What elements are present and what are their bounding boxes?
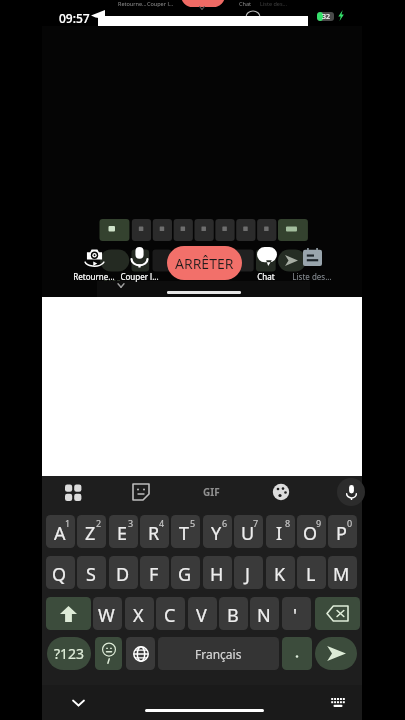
staticText: GIF [203, 485, 220, 499]
staticText: Liste des... [292, 271, 332, 282]
button[interactable]: Envoyer [315, 637, 357, 670]
button[interactable]: H [203, 556, 232, 589]
staticText: N [257, 603, 271, 628]
button[interactable]: Point [282, 637, 312, 670]
staticText: 3 [128, 517, 134, 529]
button[interactable]: Z [77, 515, 106, 548]
button[interactable]: Q [46, 556, 75, 589]
staticText: 2 [96, 517, 102, 529]
button[interactable]: O [297, 515, 326, 548]
button[interactable]: X [125, 597, 154, 630]
staticText: ' [293, 603, 298, 628]
button[interactable]: D [109, 556, 138, 589]
staticText: K [274, 562, 286, 587]
button[interactable]: Autocollants [131, 482, 151, 502]
staticText: Couper l... [120, 271, 159, 282]
button[interactable]: Changer de langue [126, 637, 155, 670]
staticText: 5 [190, 517, 196, 529]
button[interactable]: Saisie vocale [337, 478, 365, 506]
staticText: O [303, 521, 318, 546]
staticText: E [117, 521, 128, 546]
button[interactable]: Chat [243, 245, 289, 282]
staticText: Chat [257, 271, 275, 282]
staticText: ?123 [104, 278, 122, 289]
button[interactable]: Themes [271, 482, 291, 502]
staticText: Retourne... [73, 271, 115, 282]
staticText: X [133, 603, 144, 628]
button[interactable]: W [93, 597, 122, 630]
staticText: F [149, 562, 159, 587]
button[interactable]: GIF [201, 482, 221, 502]
staticText: U [241, 521, 255, 546]
button[interactable]: V [188, 597, 217, 630]
button[interactable]: Couper le micro [116, 245, 162, 282]
button[interactable]: F [140, 556, 169, 589]
button[interactable]: ' [282, 597, 311, 630]
staticText: Retourne... [118, 0, 147, 7]
staticText: Y [211, 521, 222, 546]
button[interactable]: Emoji [95, 637, 122, 670]
staticText: J [245, 562, 250, 587]
staticText: D [116, 562, 130, 587]
button[interactable]: J [234, 556, 263, 589]
staticText: 09:57 [59, 10, 90, 26]
staticText: Q [52, 562, 67, 587]
button[interactable]: Fermer le clavier [64, 689, 92, 717]
button[interactable]: U [234, 515, 263, 548]
button[interactable]: G [171, 556, 200, 589]
staticText: Z [85, 521, 96, 546]
staticText: G [178, 562, 192, 587]
staticText: T [179, 521, 190, 546]
staticText: 9 [316, 517, 322, 529]
button[interactable]: C [156, 597, 185, 630]
staticText: Français [195, 646, 242, 662]
staticText: 8 [285, 517, 291, 529]
staticText: ARRÊTER [175, 254, 234, 273]
button[interactable]: K [266, 556, 295, 589]
button[interactable]: S [77, 556, 106, 589]
staticText: V [196, 603, 207, 628]
staticText: A [54, 521, 66, 546]
button[interactable]: M [328, 556, 357, 589]
staticText: R [148, 521, 160, 546]
button[interactable]: Liste des participants [289, 245, 335, 282]
button[interactable]: A [46, 515, 75, 548]
staticText: W [98, 603, 115, 628]
staticText: M [333, 562, 350, 587]
staticText: 4 [159, 517, 165, 529]
staticText: Couper l... [147, 0, 174, 7]
staticText: B [227, 603, 239, 628]
button[interactable]: Français [158, 637, 279, 670]
button[interactable]: T [171, 515, 200, 548]
button[interactable]: B [219, 597, 248, 630]
staticText: 0 [347, 517, 353, 529]
button[interactable]: Applications [63, 482, 83, 502]
staticText: C [164, 603, 176, 628]
staticText: 32 [322, 12, 331, 21]
button[interactable]: Supprimer [315, 597, 360, 630]
button[interactable]: Y [203, 515, 232, 548]
button[interactable]: Retourner la camera [71, 245, 117, 282]
button[interactable]: L [297, 556, 326, 589]
staticText: H [210, 562, 224, 587]
button[interactable]: ?123 [47, 637, 91, 670]
staticText: I [276, 521, 283, 546]
button[interactable]: ARRÊTER [167, 246, 242, 280]
staticText: 1 [65, 517, 71, 529]
staticText: Liste des... [260, 0, 287, 7]
staticText: L [306, 562, 316, 587]
staticText: 7 [253, 517, 259, 529]
staticText: 6 [222, 517, 228, 529]
button[interactable]: Clavier [324, 689, 352, 717]
staticText: P [336, 521, 347, 546]
button[interactable]: I [266, 515, 295, 548]
button[interactable]: Maj [46, 597, 91, 630]
button[interactable]: R [140, 515, 169, 548]
button[interactable]: P [328, 515, 357, 548]
staticText: Chat [239, 0, 251, 7]
button[interactable]: E [109, 515, 138, 548]
button[interactable]: N [250, 597, 279, 630]
staticText: S [86, 562, 96, 587]
staticText: ?123 [54, 644, 85, 663]
